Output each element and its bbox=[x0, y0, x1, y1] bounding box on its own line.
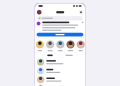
button[interactable]: New message bbox=[79, 10, 83, 14]
button[interactable]: Story bbox=[46, 40, 54, 51]
button[interactable]: Conversation bbox=[34, 66, 85, 75]
button[interactable]: Conversation bbox=[34, 84, 85, 86]
button[interactable]: Conversation bbox=[34, 75, 85, 84]
button[interactable]: Profile bbox=[37, 10, 41, 14]
button[interactable]: Story bbox=[66, 40, 75, 51]
button[interactable]: Story bbox=[76, 40, 85, 51]
button[interactable]: Continue bbox=[37, 33, 83, 36]
button[interactable]: Communities bbox=[65, 55, 73, 56]
button[interactable]: Conversation bbox=[34, 58, 85, 66]
button[interactable]: Story bbox=[56, 40, 64, 51]
button[interactable]: Story bbox=[36, 40, 44, 51]
button[interactable]: Inbox bbox=[47, 54, 53, 56]
button[interactable]: Search bbox=[34, 15, 85, 21]
